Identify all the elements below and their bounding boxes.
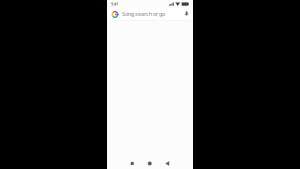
button[interactable]: Home — [143, 158, 156, 169]
staticText: 9:41 — [111, 1, 118, 7]
button[interactable]: Song search or go — [107, 8, 193, 20]
button[interactable]: Back — [161, 158, 174, 169]
staticText: Song search or go — [122, 10, 165, 18]
button[interactable]: Recent apps — [126, 158, 139, 169]
